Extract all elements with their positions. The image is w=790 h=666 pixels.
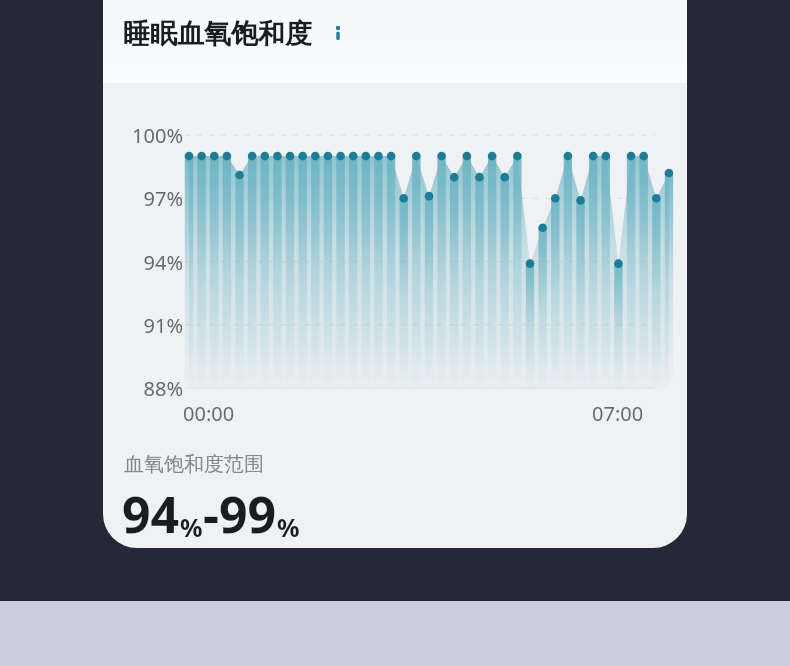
staticText: 97% (113, 185, 183, 212)
staticText: 94 (122, 480, 180, 548)
staticText: 100% (113, 122, 183, 149)
staticText: % (277, 510, 300, 544)
staticText: 88% (113, 375, 183, 402)
staticText: - (203, 480, 219, 548)
staticText: % (180, 510, 203, 544)
button[interactable]: 睡眠血氧饱和度 (121, 15, 353, 53)
staticText: 07:00 (592, 400, 644, 427)
staticText: 血氧饱和度范围 (124, 452, 264, 477)
button[interactable]: 信息 (325, 21, 351, 47)
staticText: 睡眠血氧饱和度 (123, 17, 312, 51)
staticText: 94% (113, 249, 183, 276)
staticText: 91% (113, 312, 183, 339)
staticText: 99 (219, 480, 277, 548)
staticText: 00:00 (183, 400, 235, 427)
